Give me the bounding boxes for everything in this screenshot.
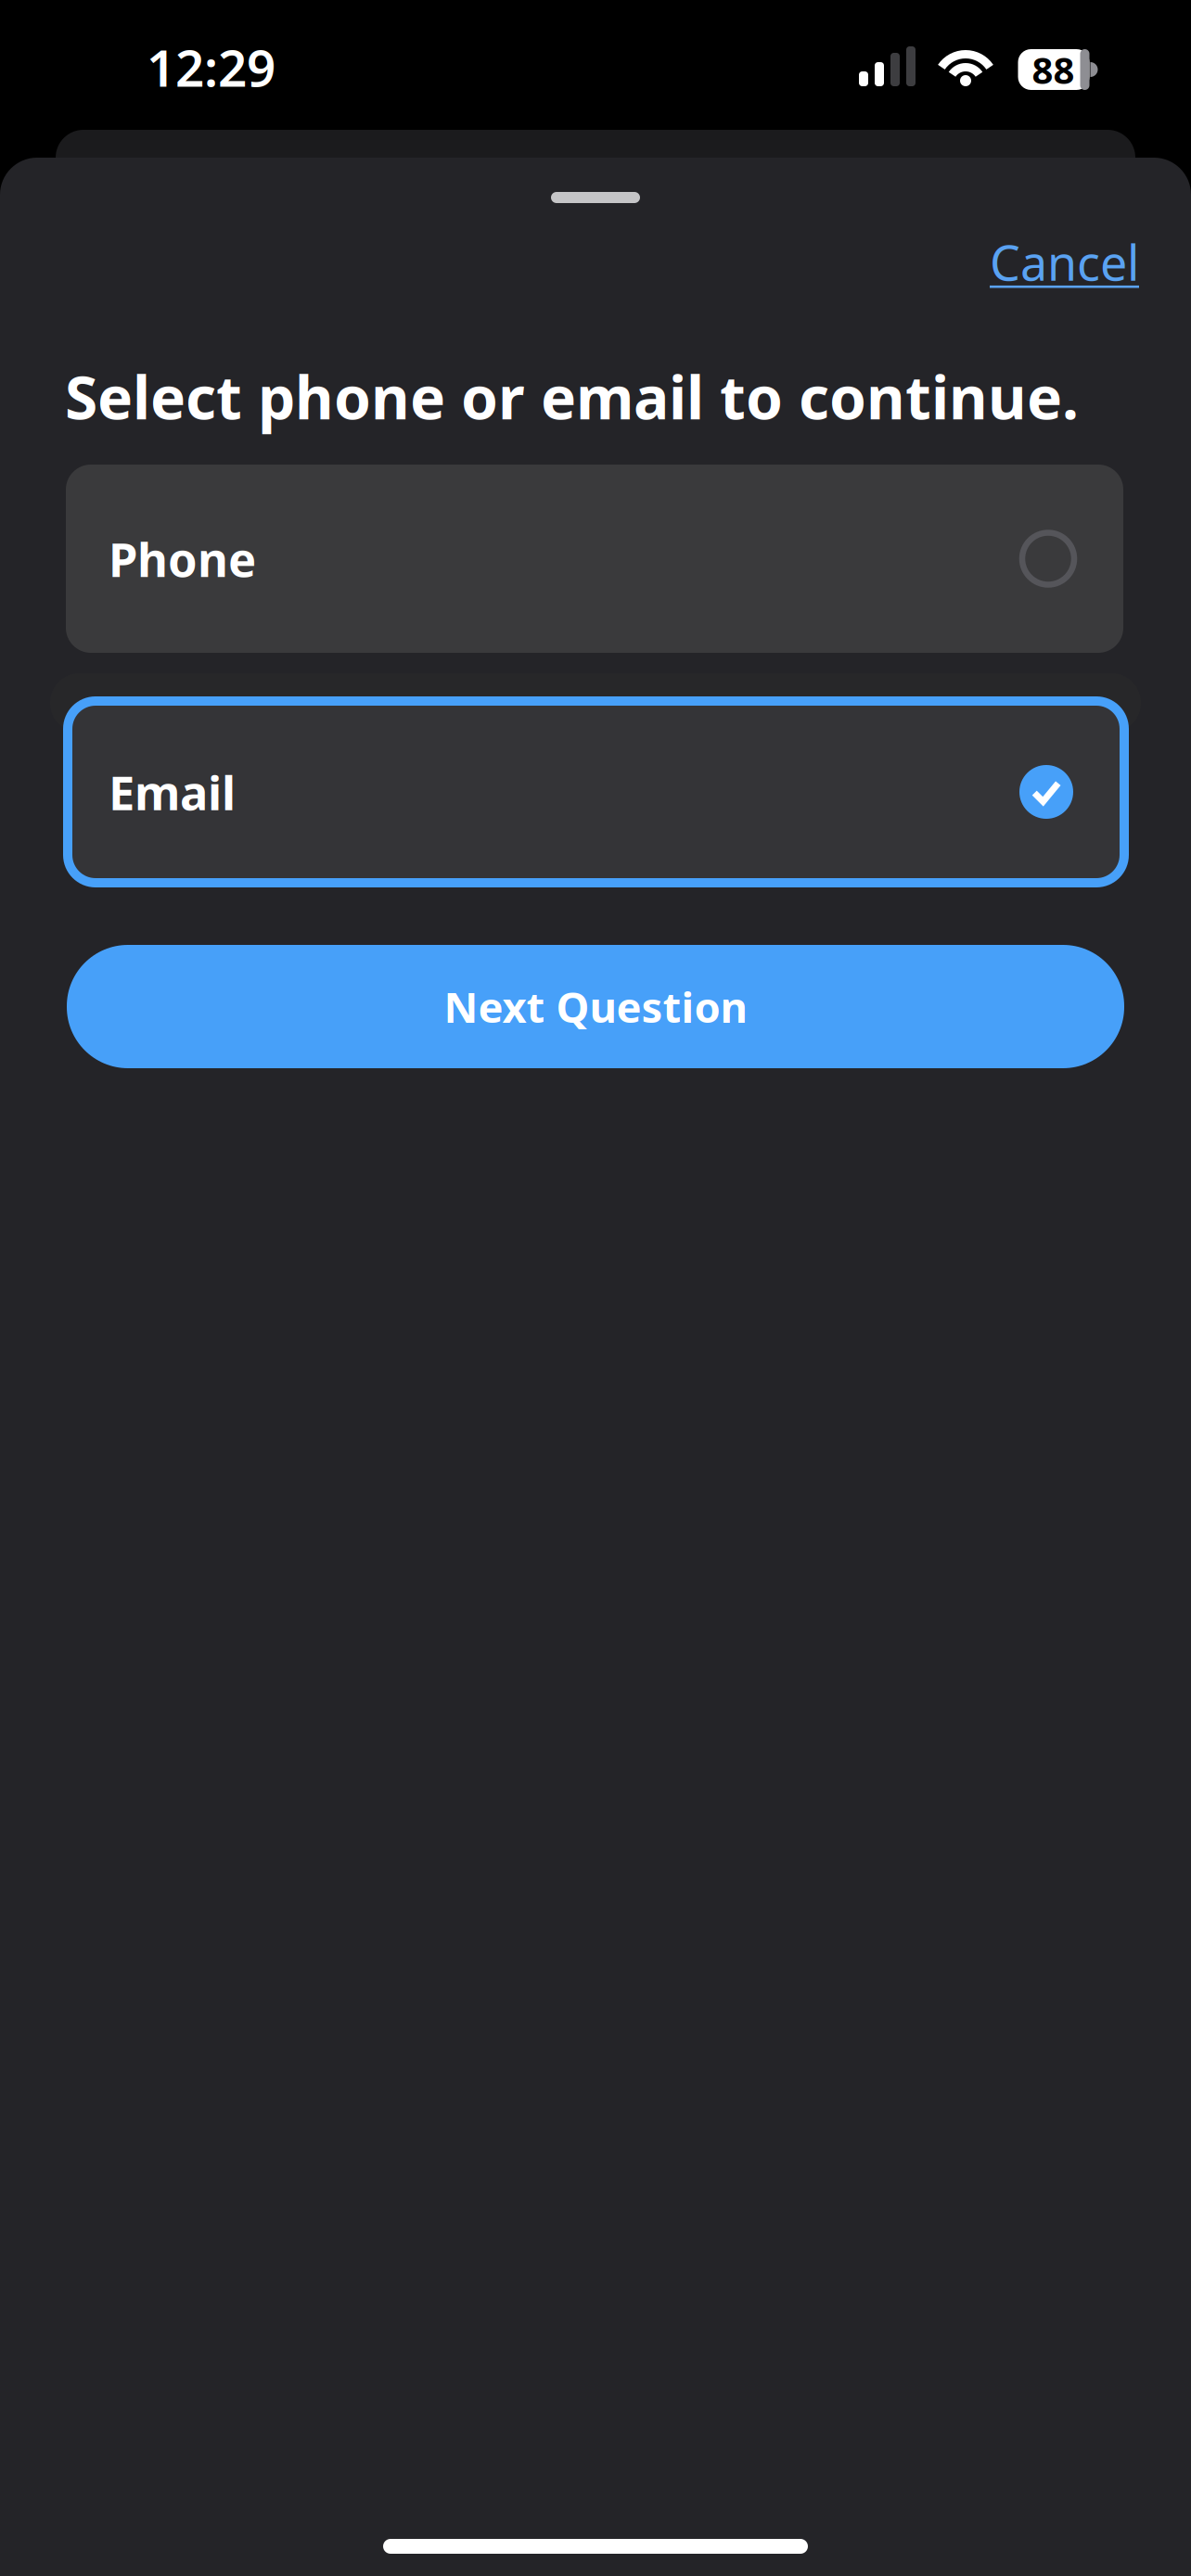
button[interactable]: Phone [66,465,1123,653]
button[interactable]: Next Question [67,945,1124,1068]
staticText: Select phone or email to continue. [65,357,1079,436]
staticText: Phone [109,528,256,590]
staticText: 88 [1032,45,1075,94]
staticText: Cancel [990,230,1139,294]
staticText: 12:29 [147,33,275,101]
button[interactable]: Email [68,701,1124,883]
button[interactable]: Cancel [990,230,1139,294]
staticText: Email [109,761,236,823]
staticText: Next Question [444,979,747,1034]
